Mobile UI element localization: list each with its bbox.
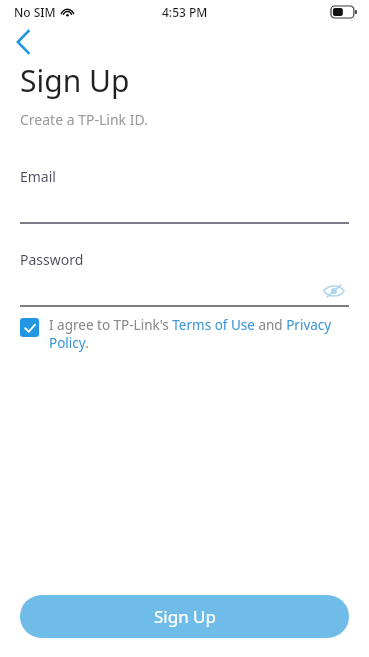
staticText: I agree to TP-Link's Terms of Use and Pr…: [49, 316, 349, 352]
button[interactable]: Sign Up: [20, 595, 349, 638]
button[interactable]: Back: [4, 26, 44, 58]
button[interactable]: Show password: [319, 276, 349, 306]
staticText: Sign Up: [20, 60, 130, 101]
staticText: Create a TP-Link ID.: [20, 110, 148, 129]
button[interactable]: I agree to TP-Link's Terms of Use and Pr…: [49, 316, 349, 352]
staticText: 4:53 PM: [162, 4, 208, 20]
button[interactable]: I agree checkbox: [20, 318, 39, 337]
staticText: No SIM: [14, 4, 56, 20]
staticText: Email: [20, 167, 56, 186]
staticText: Sign Up: [154, 605, 216, 628]
staticText: Password: [20, 250, 84, 269]
